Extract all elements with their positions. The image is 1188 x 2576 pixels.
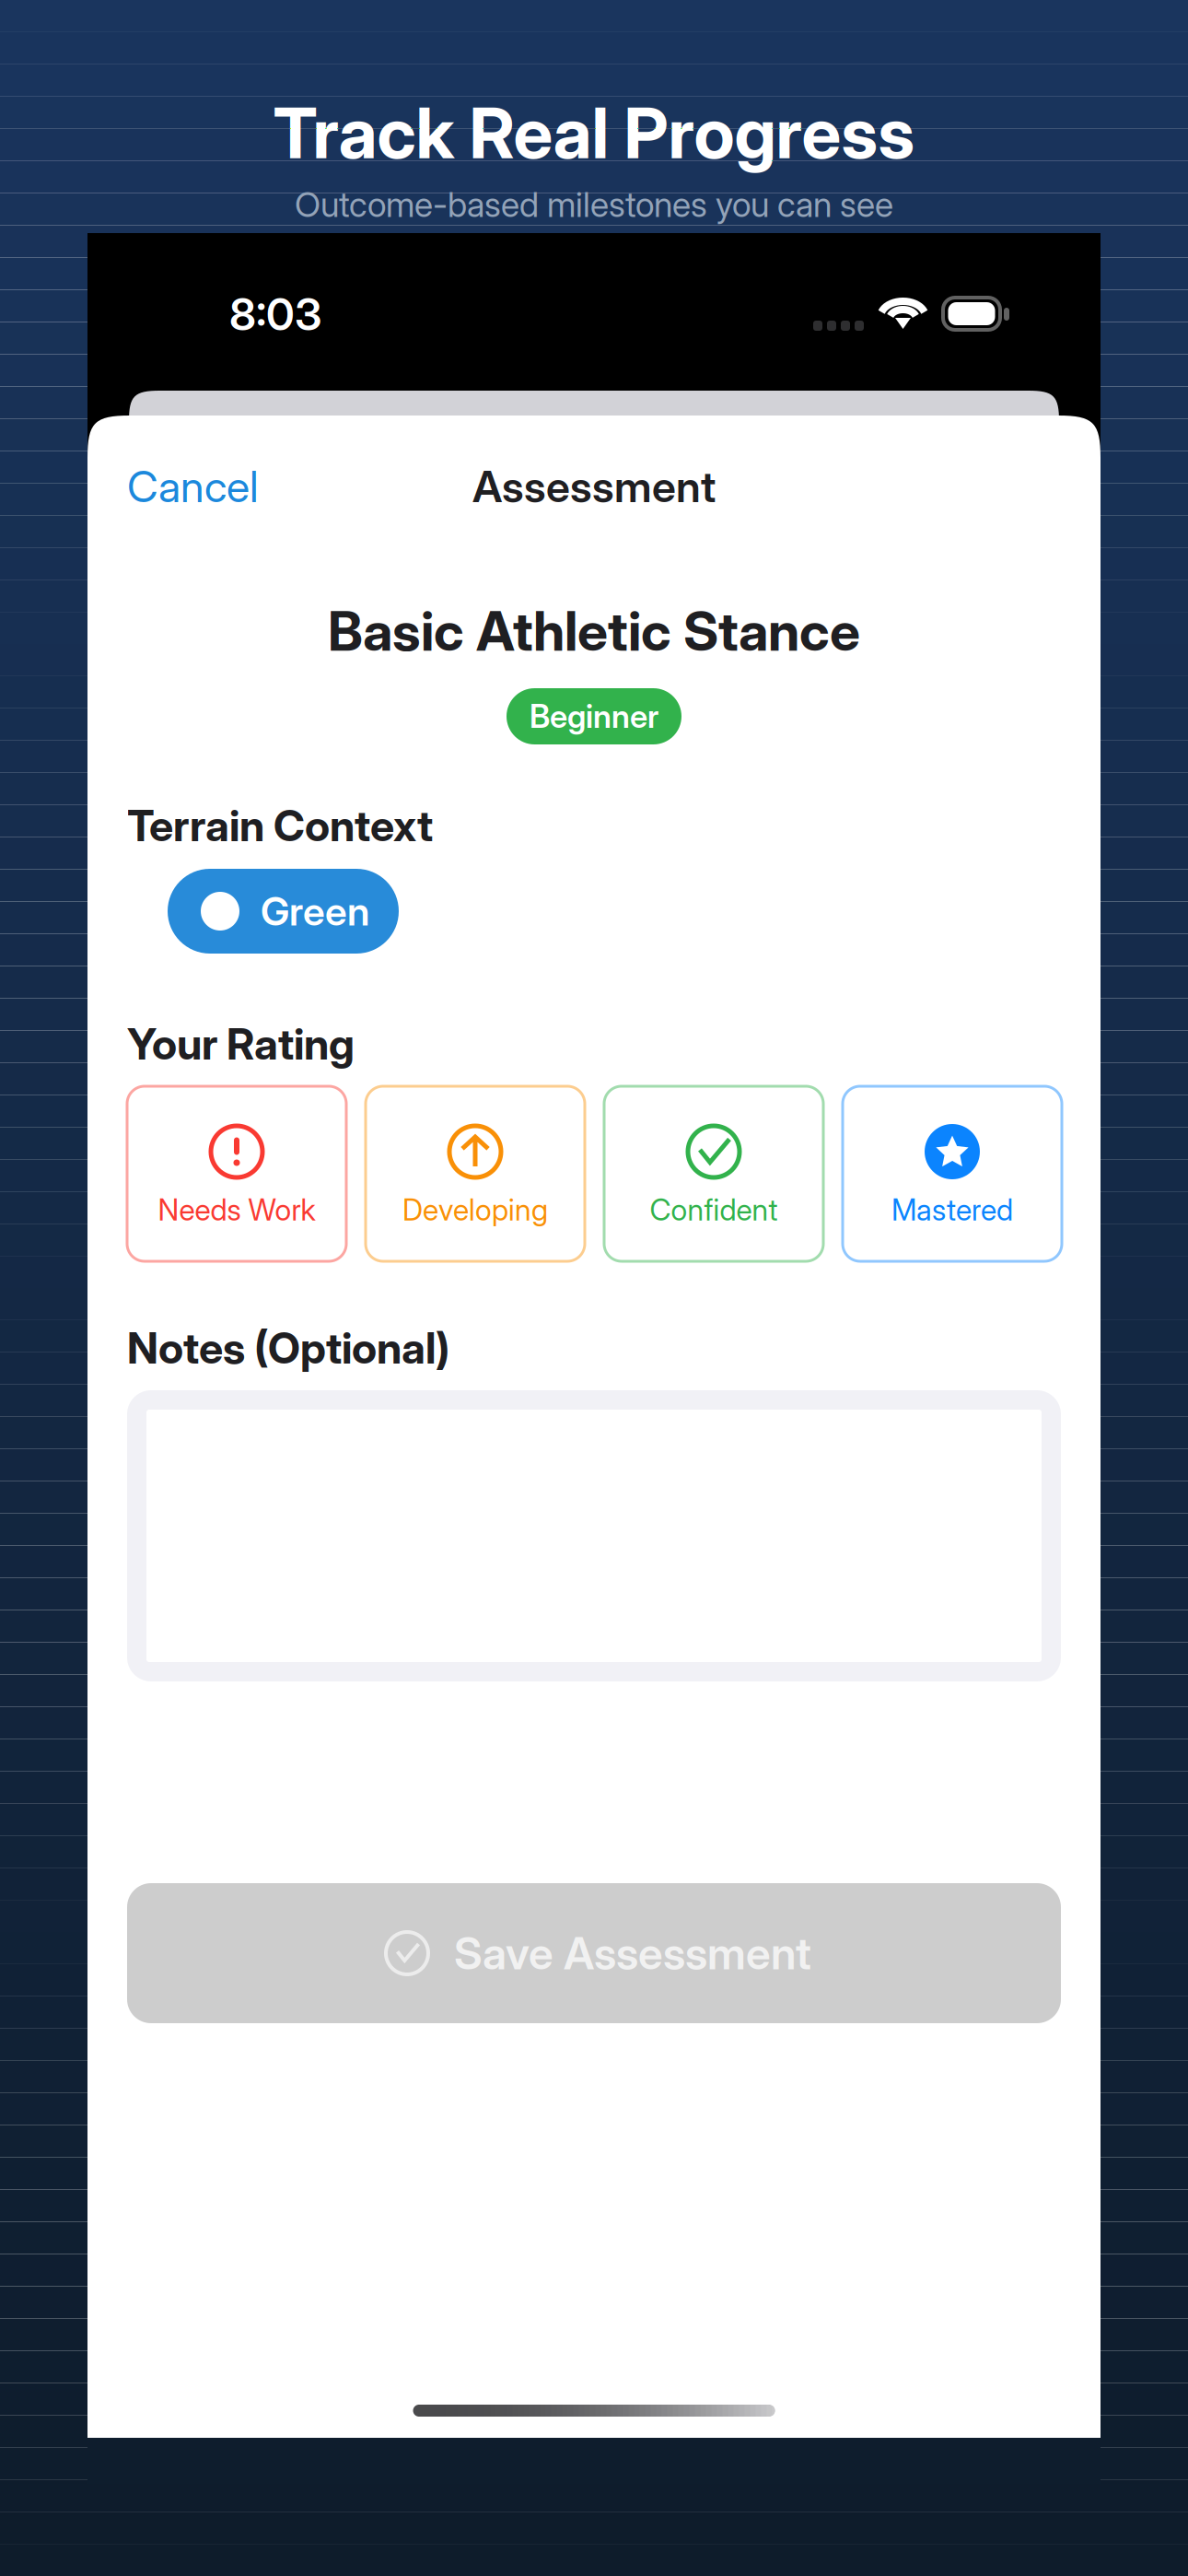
staticText: Assessment (472, 460, 716, 513)
staticText: Outcome-based milestones you can see (295, 184, 893, 225)
staticText: Beginner (530, 697, 658, 736)
staticText: Cancel (127, 460, 259, 513)
button[interactable]: Mastered (843, 1086, 1062, 1261)
button[interactable]: Green (168, 869, 399, 954)
staticText: Notes (Optional) (127, 1322, 449, 1374)
button[interactable]: Save Assessment (127, 1883, 1061, 2023)
staticText: Green (261, 887, 369, 935)
staticText: Your Rating (127, 1018, 355, 1070)
button[interactable]: Cancel (127, 461, 311, 512)
button[interactable]: Confident (604, 1086, 823, 1261)
button[interactable]: Developing (366, 1086, 585, 1261)
staticText: Save Assessment (454, 1926, 811, 1980)
button[interactable]: Needs Work (127, 1086, 346, 1261)
staticText: Developing (402, 1192, 548, 1227)
staticText: Terrain Context (127, 800, 433, 852)
staticText: Mastered (891, 1192, 1013, 1227)
staticText: Confident (650, 1192, 778, 1227)
staticText: Needs Work (158, 1192, 315, 1227)
staticText: 8:03 (229, 287, 321, 341)
staticText: Basic Athletic Stance (328, 598, 860, 664)
staticText: Track Real Progress (273, 90, 915, 175)
